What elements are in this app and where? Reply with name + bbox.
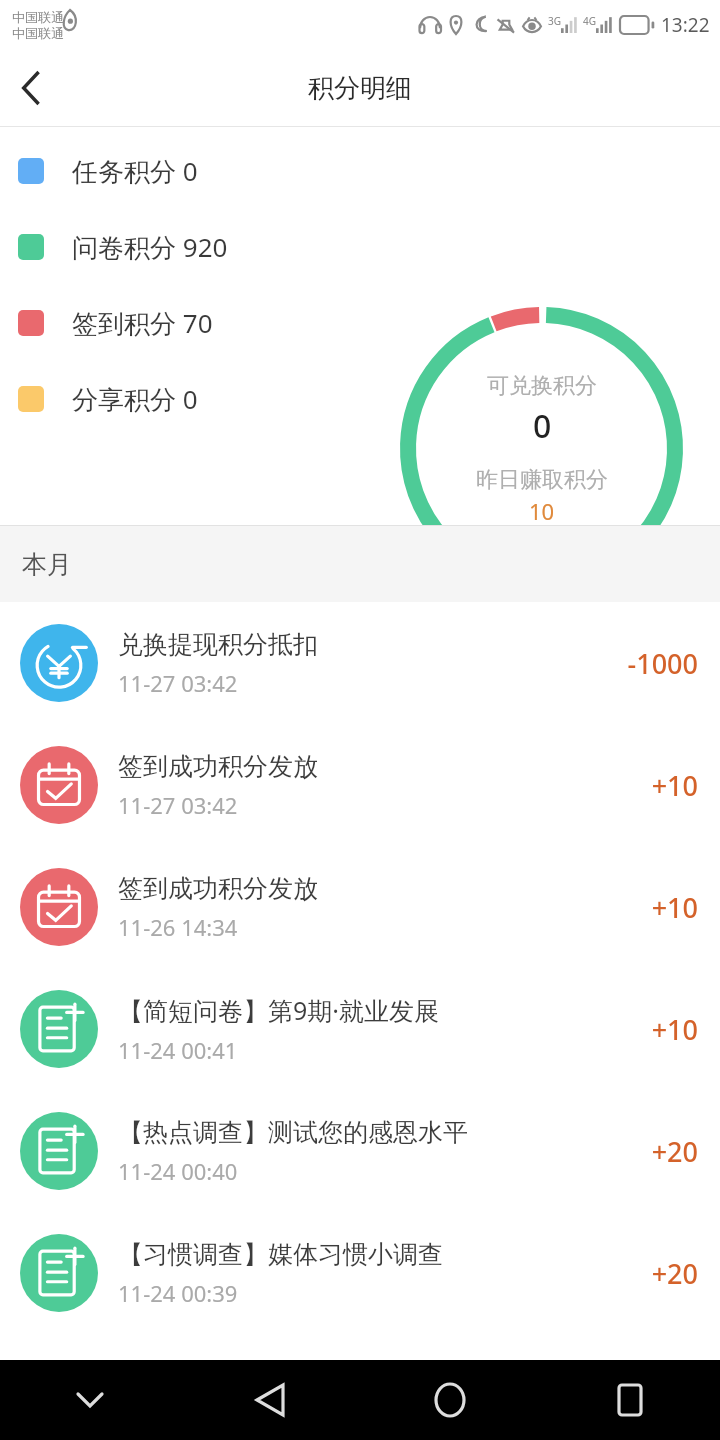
- staticText: 4G: [583, 14, 596, 28]
- staticText: 3G: [548, 14, 561, 28]
- staticText: +10: [651, 767, 698, 804]
- staticText: 0: [533, 404, 552, 448]
- staticText: 积分明细: [308, 72, 412, 105]
- button[interactable]: 【习惯调查】媒体习惯小调查: [0, 1212, 720, 1334]
- staticText: 中国联通: [12, 9, 64, 25]
- staticText: 11-27 03:42: [118, 668, 238, 698]
- staticText: 签到成功积分发放: [118, 751, 318, 782]
- button[interactable]: 签到成功积分发放: [0, 846, 720, 968]
- button[interactable]: 【热点调查】测试您的感恩水平: [0, 1090, 720, 1212]
- staticText: 昨日赚取积分: [476, 466, 608, 494]
- staticText: +10: [651, 1011, 698, 1048]
- button[interactable]: 签到成功积分发放: [0, 724, 720, 846]
- staticText: 问卷积分 920: [72, 229, 228, 265]
- staticText: 【习惯调查】媒体习惯小调查: [118, 1239, 443, 1270]
- staticText: +10: [651, 889, 698, 926]
- staticText: 可兑换积分: [487, 372, 597, 400]
- button[interactable]: Recents: [540, 1360, 720, 1440]
- staticText: 11-24 00:40: [118, 1156, 238, 1186]
- staticText: -1000: [627, 645, 698, 682]
- staticText: +20: [651, 1255, 698, 1292]
- staticText: 11-26 14:34: [118, 912, 238, 942]
- button[interactable]: Back: [180, 1360, 360, 1440]
- staticText: 中国联通: [12, 25, 64, 41]
- staticText: 11-24 00:41: [118, 1035, 238, 1065]
- staticText: 本月: [22, 549, 72, 580]
- staticText: 11-27 03:42: [118, 790, 238, 820]
- staticText: 分享积分 0: [72, 381, 198, 417]
- button[interactable]: Home: [360, 1360, 540, 1440]
- staticText: +20: [651, 1133, 698, 1170]
- staticText: 11-24 00:39: [118, 1278, 238, 1308]
- staticText: 任务积分 0: [72, 153, 198, 189]
- staticText: 10: [529, 496, 555, 526]
- staticText: 13:22: [661, 12, 710, 38]
- button[interactable]: Back: [0, 56, 64, 120]
- staticText: 【热点调查】测试您的感恩水平: [118, 1117, 468, 1148]
- staticText: 签到成功积分发放: [118, 873, 318, 904]
- button[interactable]: Hide keyboard: [0, 1360, 180, 1440]
- staticText: 兑换提现积分抵扣: [118, 629, 318, 660]
- staticText: 【简短问卷】第9期·就业发展: [118, 993, 440, 1027]
- button[interactable]: 兑换提现积分抵扣: [0, 602, 720, 724]
- button[interactable]: 【简短问卷】第9期·就业发展: [0, 968, 720, 1090]
- staticText: 签到积分 70: [72, 305, 213, 341]
